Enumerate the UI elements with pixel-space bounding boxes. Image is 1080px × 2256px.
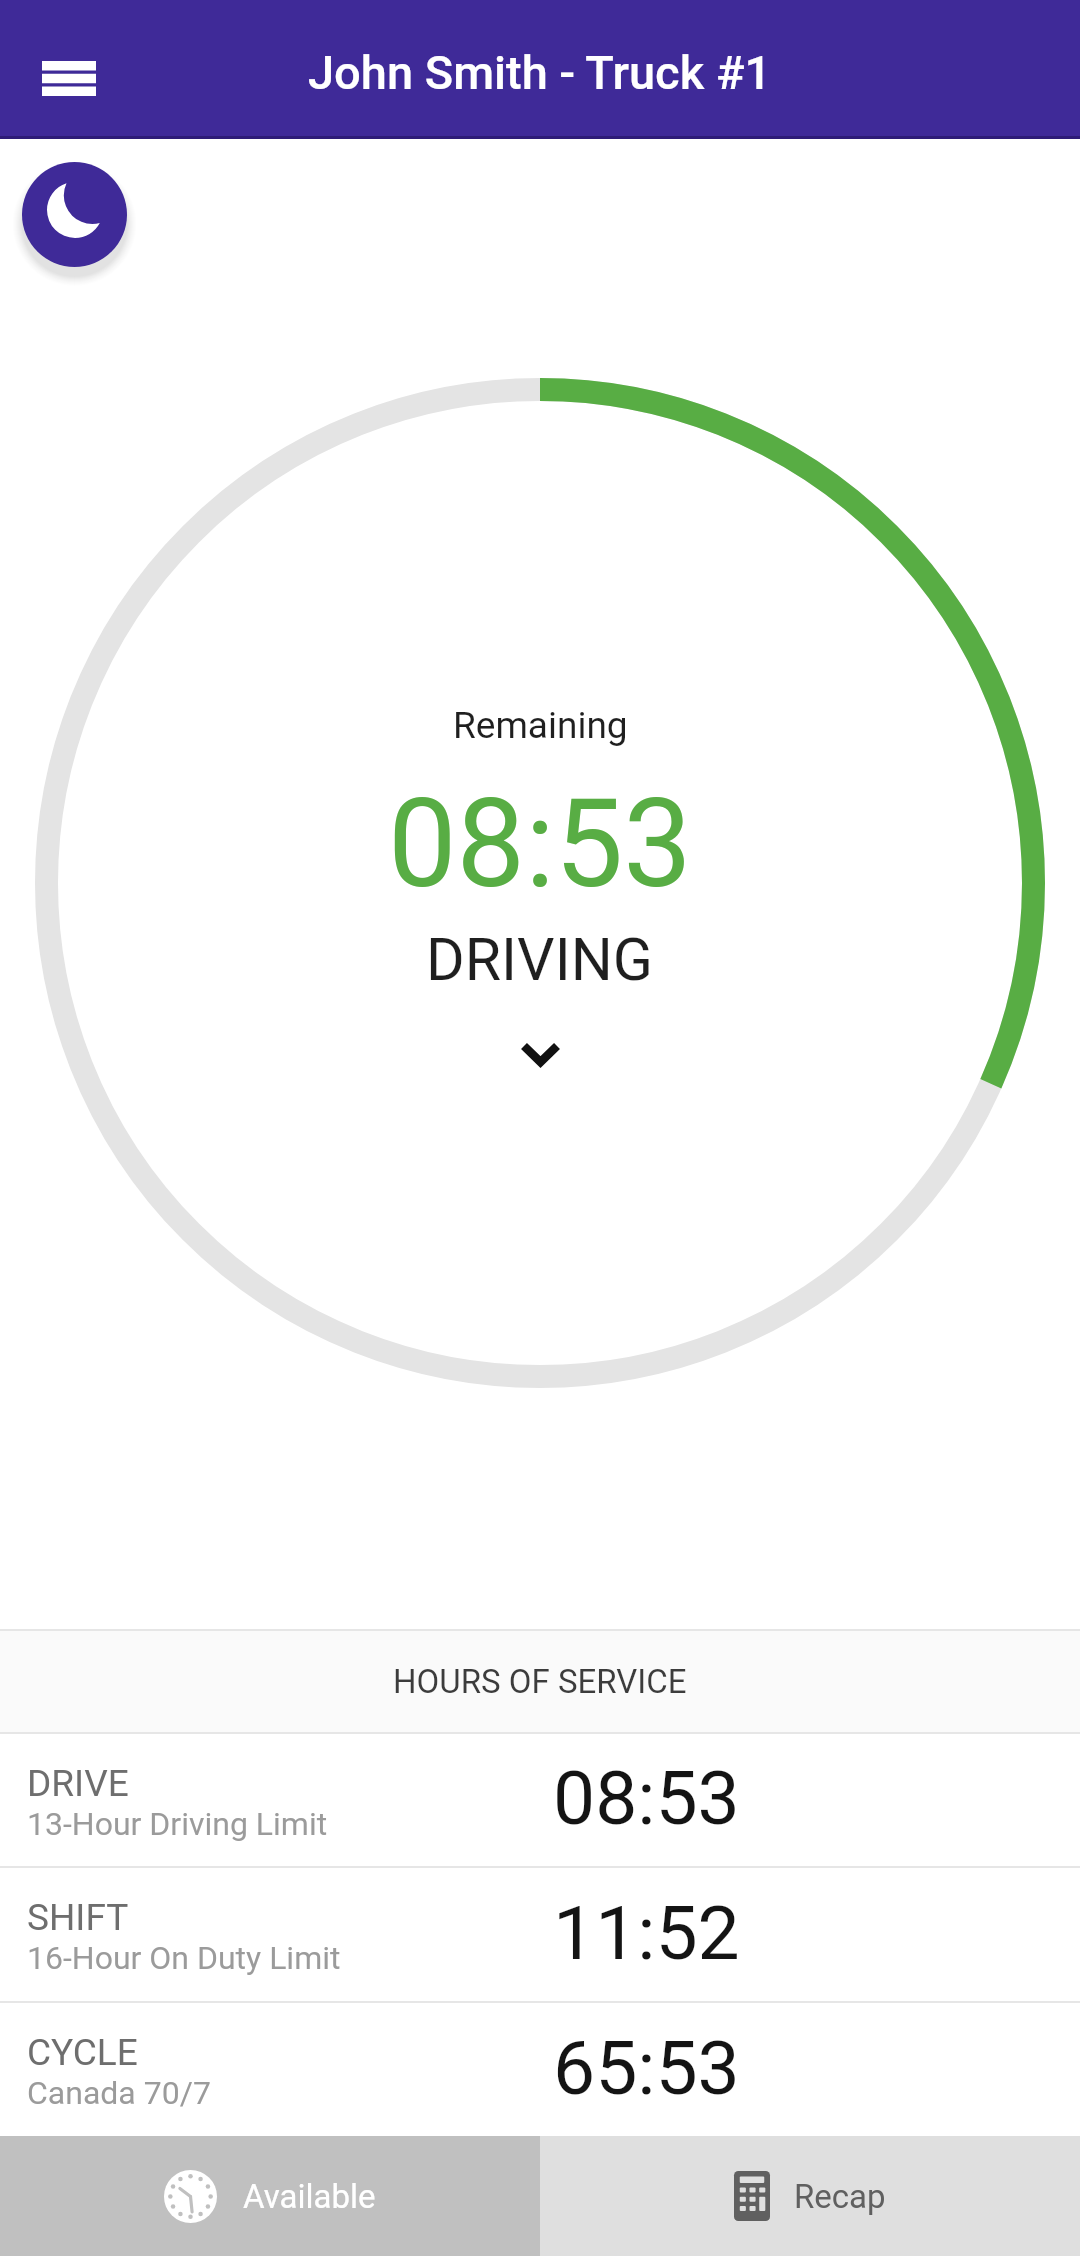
staticText: DRIVING [426, 925, 654, 994]
staticText: Remaining [453, 704, 628, 747]
staticText: HOURS OF SERVICE [393, 1662, 687, 1701]
button[interactable]: Recap [540, 2136, 1080, 2256]
staticText: Recap [794, 2177, 886, 2216]
staticText: 08:53 [553, 1754, 740, 1842]
staticText: 08:53 [388, 773, 692, 916]
button[interactable]: CYCLE [0, 2003, 1080, 2136]
staticText: John Smith - Truck #1 [308, 45, 772, 100]
staticText: DRIVE [27, 1762, 129, 1805]
button[interactable]: Available [0, 2136, 540, 2256]
button[interactable]: SHIFT [0, 1868, 1080, 2001]
staticText: CYCLE [27, 2031, 138, 2074]
staticText: Canada 70/7 [27, 2074, 211, 2112]
staticText: 13-Hour Driving Limit [27, 1805, 328, 1843]
button[interactable]: DRIVE [0, 1734, 1080, 1866]
button[interactable]: Open navigation menu [21, 30, 117, 126]
staticText: 65:53 [553, 2024, 740, 2112]
staticText: SHIFT [27, 1896, 129, 1939]
button[interactable]: Change duty status [502, 1032, 578, 1076]
staticText: 16-Hour On Duty Limit [27, 1939, 341, 1977]
button[interactable]: Sleeper berth status [22, 162, 127, 267]
staticText: 11:52 [553, 1889, 740, 1977]
staticText: Available [243, 2177, 376, 2216]
